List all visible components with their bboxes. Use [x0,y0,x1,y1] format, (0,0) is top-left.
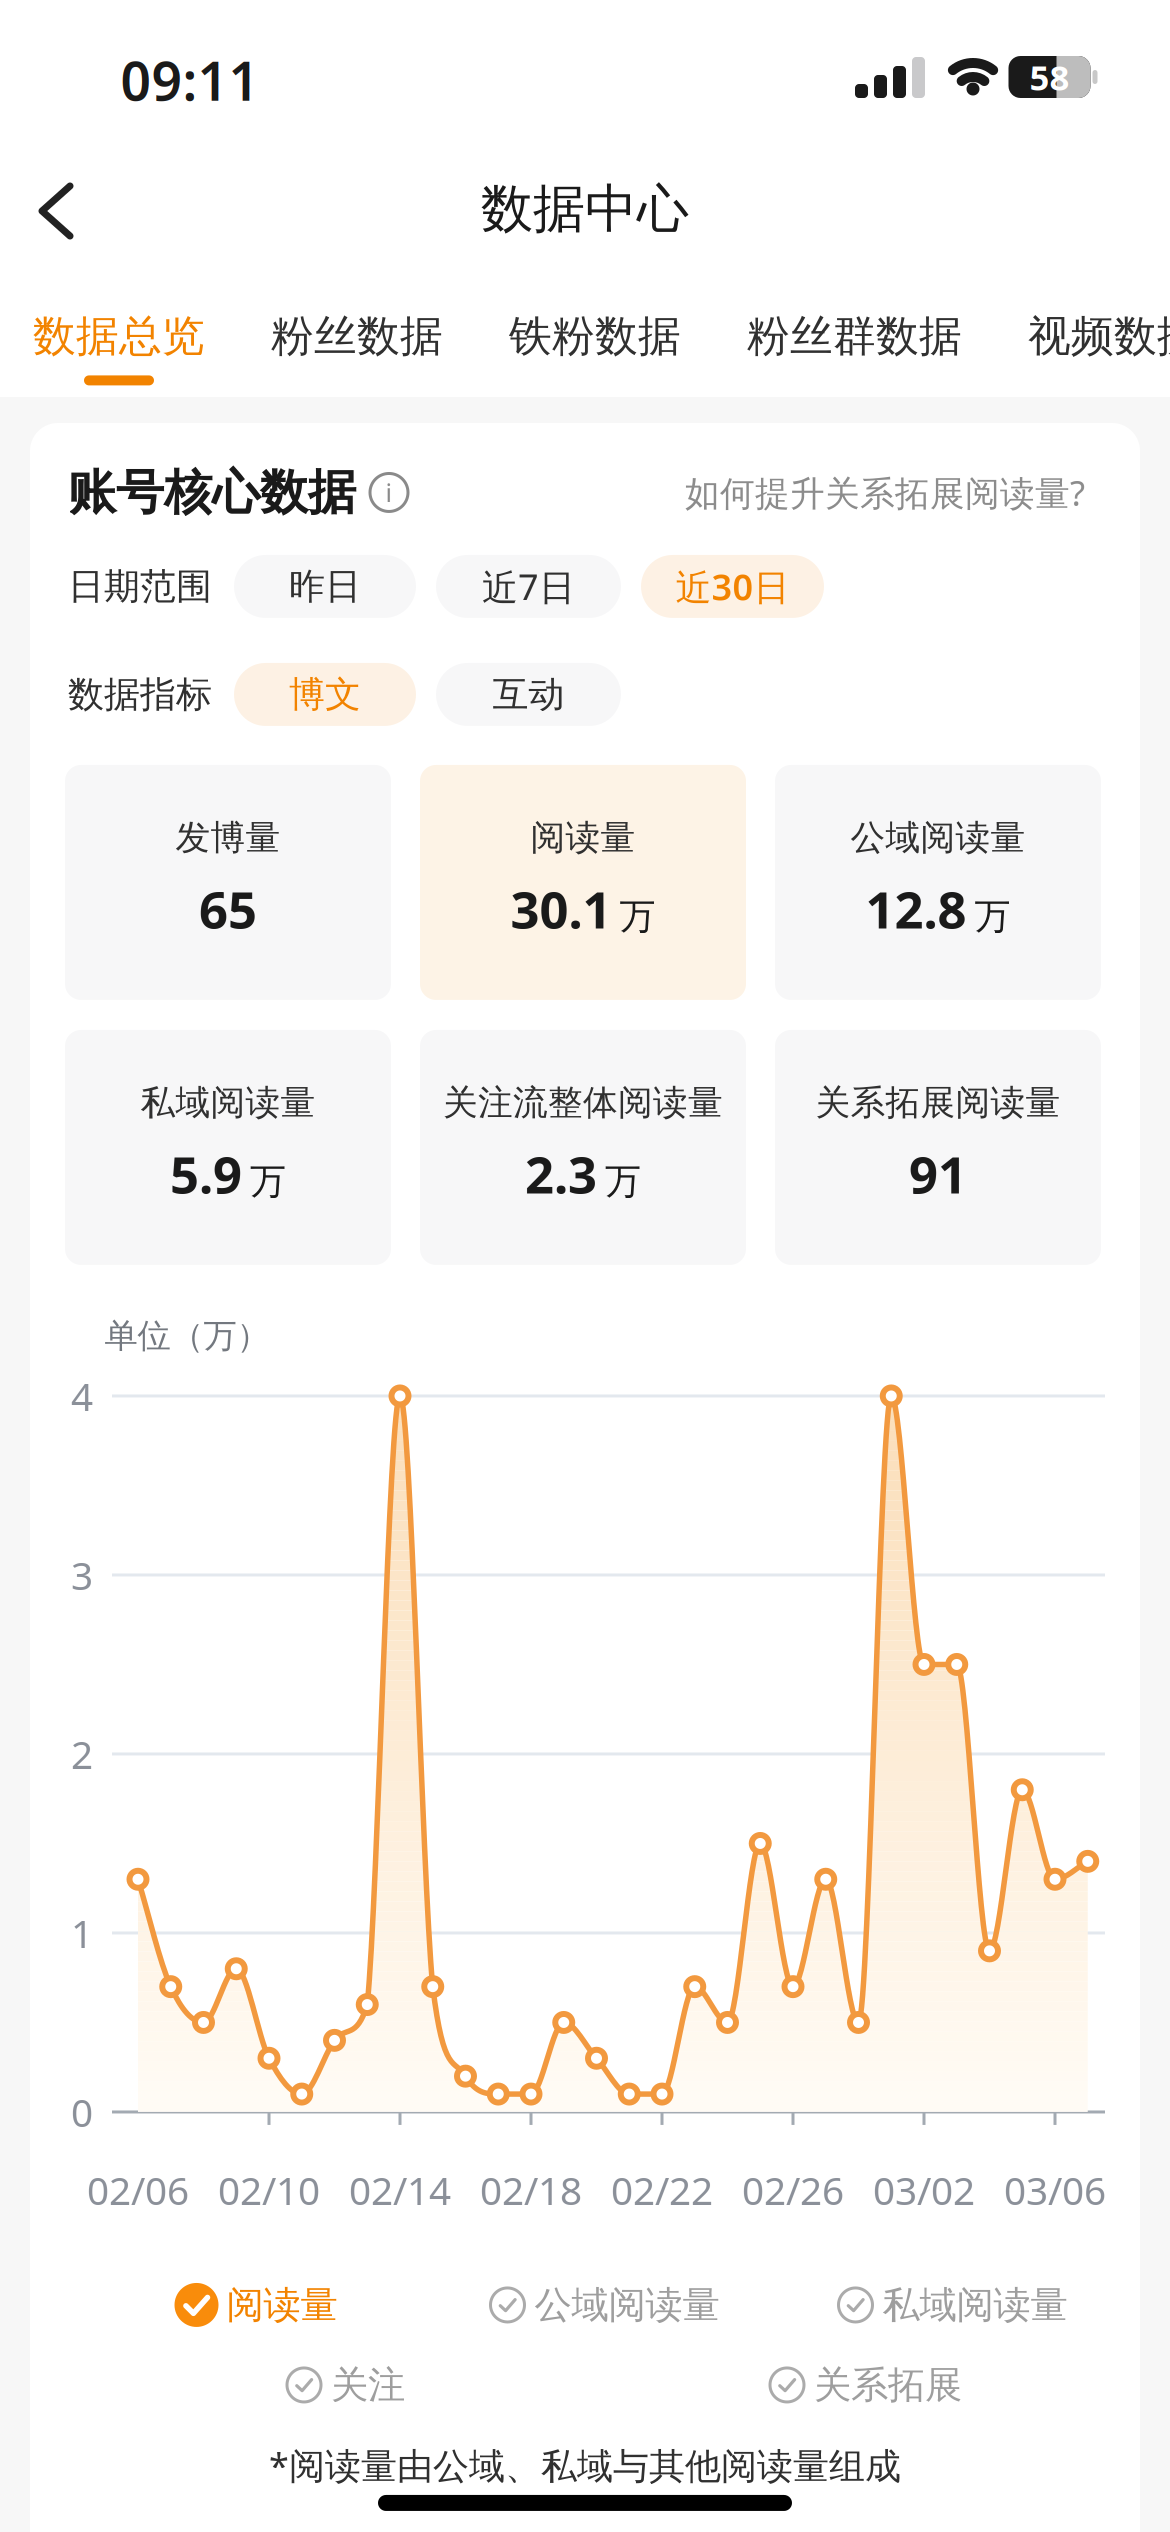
button[interactable]: 数据总览 [33,310,205,385]
button[interactable]: 如何提升关系拓展阅读量? [685,469,1085,515]
staticText: 账号核心数据 [68,463,356,522]
button[interactable]: Back [0,156,76,254]
button[interactable]: 公域阅读量 [488,2282,719,2328]
button[interactable]: 关系拓展 [768,2362,962,2408]
staticText: 03/06 [1004,2164,1106,2216]
staticText: 1 [71,1907,93,1959]
staticText: 私域阅读量 [882,2282,1067,2328]
staticText: 02/14 [349,2164,451,2216]
staticText: 单位（万） [104,1315,269,1356]
button[interactable]: 近30日 [641,555,824,618]
staticText: 02/22 [611,2164,713,2216]
staticText: 如何提升关系拓展阅读量? [685,469,1085,515]
staticText: 2 [71,1728,93,1780]
button[interactable]: 视频数据 [1028,310,1170,385]
button[interactable]: 阅读量 [420,765,746,1000]
button[interactable]: 关注 [285,2362,405,2408]
staticText: 65 [199,875,257,942]
staticText: 万 [619,894,655,938]
staticText: 昨日 [289,564,361,608]
staticText: 2.3 [525,1140,597,1207]
staticText: 关系拓展阅读量 [815,1081,1060,1124]
staticText: i [385,476,392,509]
staticText: 互动 [492,672,564,716]
staticText: 58 [1029,54,1069,100]
staticText: 发博量 [175,816,280,859]
button[interactable]: 博文 [234,663,416,726]
button[interactable]: 私域阅读量 [65,1030,391,1265]
button[interactable]: 近7日 [436,555,621,618]
button[interactable]: Info [356,473,408,511]
staticText: 关注流整体阅读量 [443,1081,723,1124]
staticText: 万 [974,894,1010,938]
staticText: 数据中心 [481,177,689,241]
staticText: 视频数据 [1028,310,1170,362]
staticText: 3 [71,1549,93,1601]
staticText: 近7日 [482,563,575,610]
staticText: 5.9 [170,1140,242,1207]
staticText: 4 [71,1370,93,1422]
staticText: 铁粉数据 [509,310,681,362]
staticText: 关注 [331,2362,405,2408]
button[interactable]: 粉丝群数据 [747,310,962,385]
staticText: 02/10 [218,2164,320,2216]
button[interactable]: 互动 [436,663,621,726]
staticText: 91 [909,1140,967,1207]
button[interactable]: 发博量 [65,765,391,1000]
staticText: 03/02 [873,2164,975,2216]
button[interactable]: 私域阅读量 [836,2282,1067,2328]
staticText: 粉丝群数据 [747,310,962,362]
staticText: 12.8 [865,875,966,942]
staticText: 02/18 [480,2164,582,2216]
staticText: 阅读量 [226,2282,337,2328]
staticText: 日期范围 [68,564,212,608]
staticText: 02/06 [87,2164,189,2216]
staticText: 万 [250,1159,286,1203]
staticText: 30.1 [510,875,611,942]
staticText: 万 [605,1159,641,1203]
staticText: 公域阅读量 [534,2282,719,2328]
staticText: 公域阅读量 [850,816,1025,859]
button[interactable]: 关系拓展阅读量 [775,1030,1101,1265]
staticText: 粉丝数据 [271,310,443,362]
staticText: 09:11 [120,45,259,115]
staticText: 近30日 [675,563,789,610]
button[interactable]: 铁粉数据 [509,310,681,385]
staticText: 数据指标 [68,672,212,716]
staticText: 02/26 [742,2164,844,2216]
staticText: 博文 [289,672,361,716]
button[interactable]: 粉丝数据 [271,310,443,385]
button[interactable]: 公域阅读量 [775,765,1101,1000]
staticText: 数据总览 [33,310,205,362]
button[interactable]: 阅读量 [174,2282,337,2328]
button[interactable]: 关注流整体阅读量 [420,1030,746,1265]
staticText: 0 [71,2086,93,2138]
staticText: 关系拓展 [814,2362,962,2408]
staticText: *阅读量由公域、私域与其他阅读量组成 [269,2441,901,2489]
button[interactable]: 昨日 [234,555,416,618]
staticText: 私域阅读量 [140,1081,315,1124]
staticText: 阅读量 [530,816,635,859]
